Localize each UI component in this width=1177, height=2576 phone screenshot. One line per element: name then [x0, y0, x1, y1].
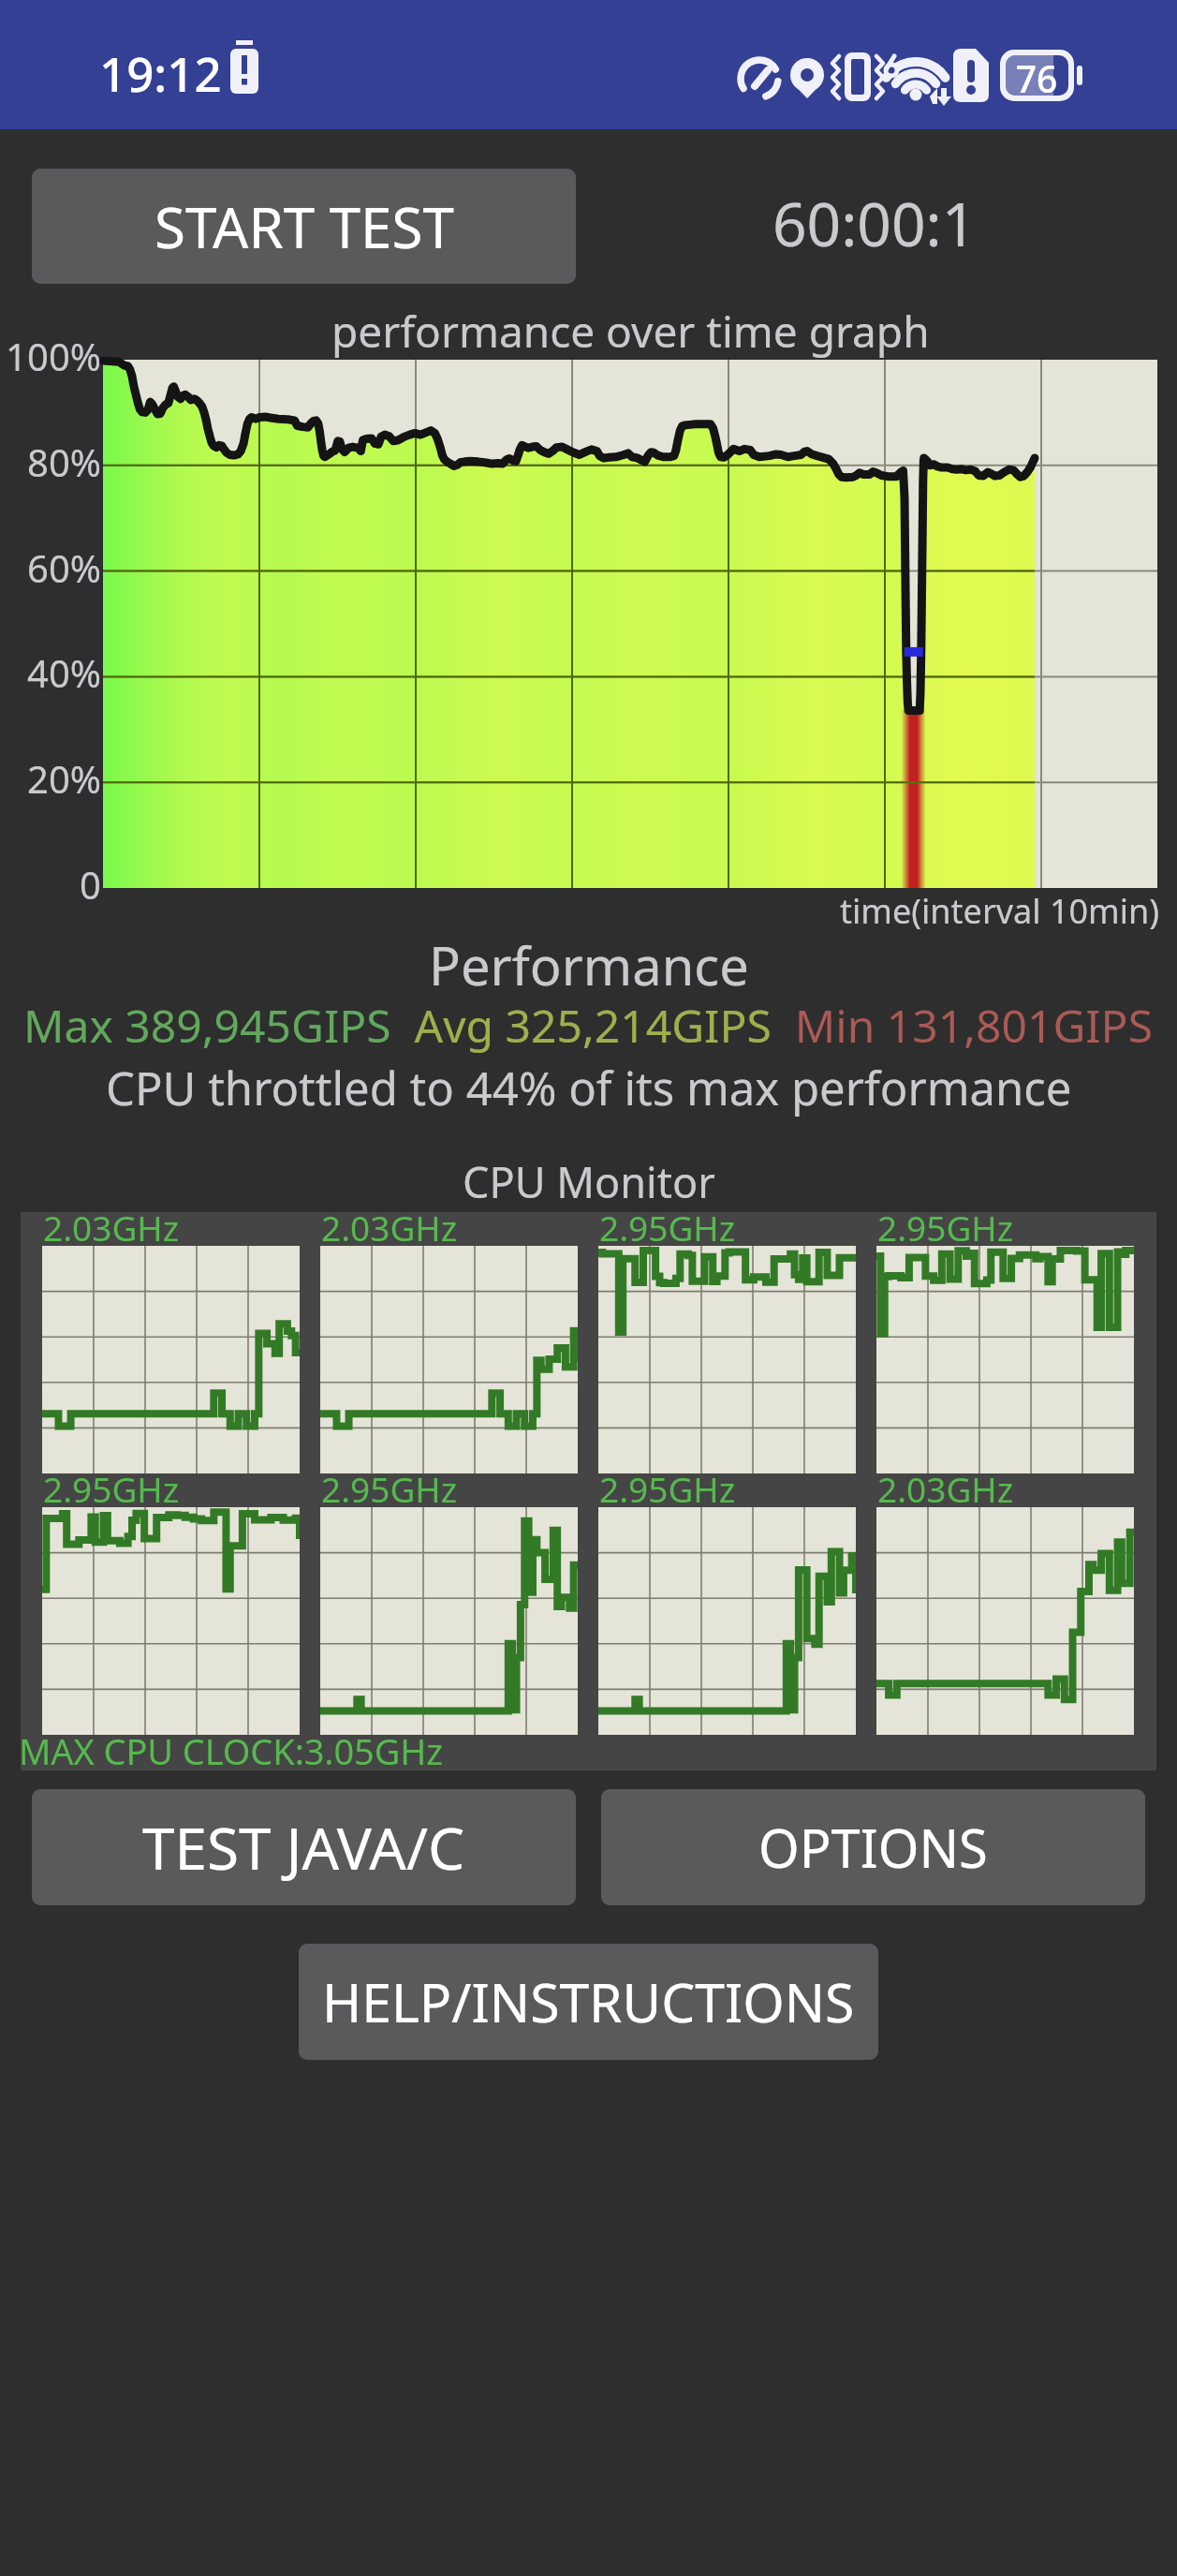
staticText: HELP/INSTRUCTIONS — [322, 1965, 855, 2038]
staticText: START TEST — [154, 188, 454, 265]
staticText: TEST JAVA/C — [142, 1808, 465, 1887]
staticText: 100% — [6, 331, 101, 381]
staticText: time(interval 10min) — [840, 888, 1160, 933]
staticText: 60:00:1 — [772, 183, 977, 264]
staticText: performance over time graph — [331, 302, 930, 361]
staticText: 80% — [27, 437, 101, 487]
staticText: 2.95GHz — [321, 1465, 458, 1512]
button[interactable]: HELP/INSTRUCTIONS — [299, 1944, 878, 2060]
staticText: OPTIONS — [758, 1812, 988, 1883]
staticText: 20% — [27, 753, 101, 804]
staticText: Max 389,945GIPS Avg 325,214GIPS Min 131,… — [23, 995, 1154, 1056]
staticText: Performance — [429, 929, 749, 1000]
staticText: MAX CPU CLOCK:3.05GHz — [19, 1726, 444, 1775]
staticText: 2.95GHz — [599, 1204, 736, 1251]
button[interactable]: TEST JAVA/C — [32, 1789, 576, 1905]
staticText: 60% — [27, 542, 101, 593]
staticText: 2.95GHz — [599, 1465, 736, 1512]
staticText: CPU Monitor — [463, 1153, 715, 1210]
button[interactable]: OPTIONS — [601, 1789, 1145, 1905]
staticText: 2.03GHz — [43, 1204, 180, 1251]
button[interactable]: START TEST — [32, 169, 576, 284]
staticText: 2.03GHz — [877, 1465, 1014, 1512]
staticText: CPU throttled to 44% of its max performa… — [106, 1057, 1072, 1119]
staticText: 19:12 — [99, 40, 222, 105]
staticText: 0 — [80, 859, 101, 910]
staticText: 40% — [27, 647, 101, 698]
staticText: 76 — [1007, 53, 1067, 103]
staticText: 2.03GHz — [321, 1204, 458, 1251]
staticText: 2.95GHz — [877, 1204, 1014, 1251]
staticText: 2.95GHz — [43, 1465, 180, 1512]
